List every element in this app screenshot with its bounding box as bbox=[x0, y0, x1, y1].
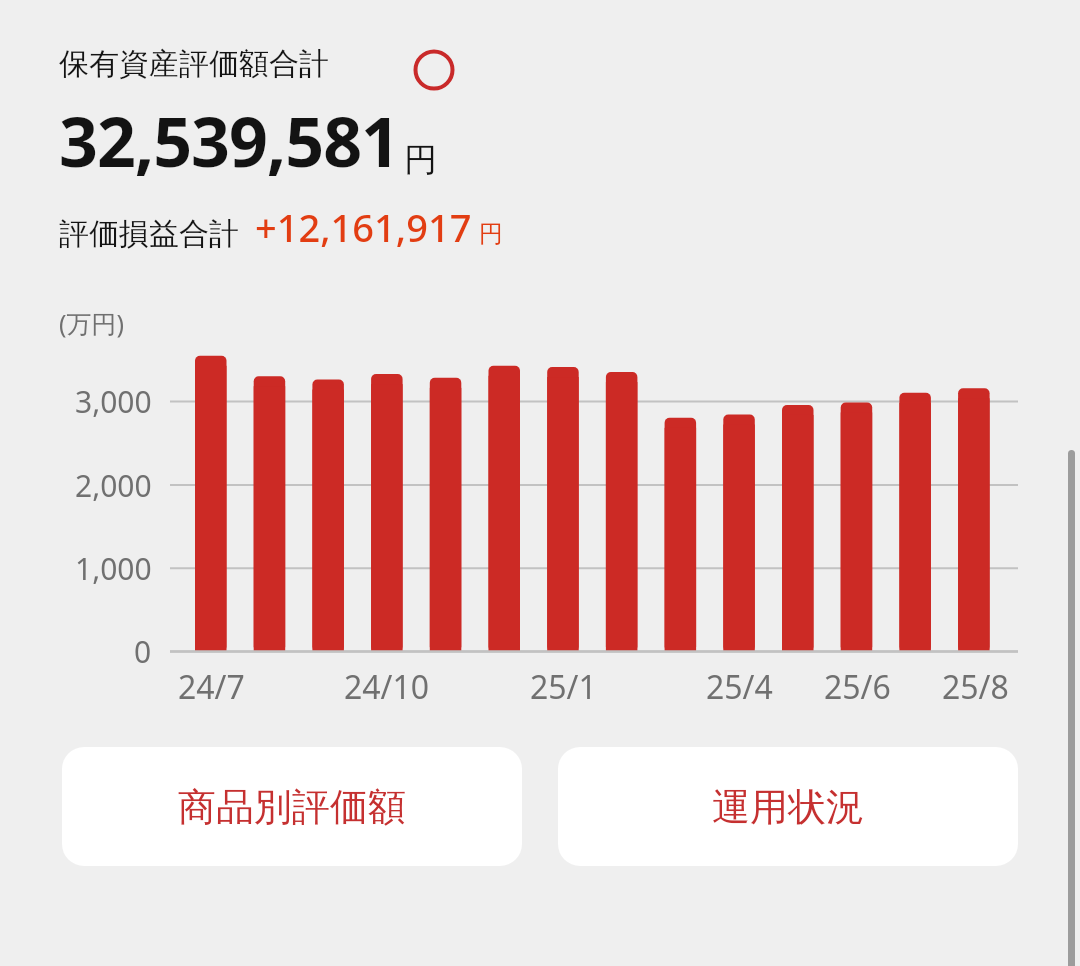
staticText: 3,000 bbox=[75, 381, 152, 422]
button[interactable]: 運用状況 bbox=[558, 747, 1018, 866]
staticText: 32,539,581 bbox=[59, 94, 399, 187]
button[interactable]: 保有資産評価額合計 bbox=[59, 44, 387, 84]
staticText: +12,161,917 bbox=[255, 201, 472, 253]
staticText: 25/4 bbox=[706, 665, 773, 709]
staticText: 保有資産評価額合計 bbox=[59, 45, 329, 83]
button[interactable]: 商品別評価額 bbox=[62, 747, 522, 866]
staticText: 1,000 bbox=[75, 548, 152, 589]
staticText: 25/8 bbox=[942, 665, 1009, 709]
staticText: 円 bbox=[404, 139, 437, 181]
staticText: 0 bbox=[134, 631, 152, 672]
staticText: 25/1 bbox=[530, 665, 597, 709]
staticText: 円 bbox=[479, 219, 503, 249]
staticText: 24/7 bbox=[178, 665, 245, 709]
staticText: 運用状況 bbox=[712, 783, 864, 831]
staticText: 2,000 bbox=[75, 465, 152, 506]
staticText: 25/6 bbox=[824, 665, 891, 709]
staticText: 評価損益合計 bbox=[59, 215, 239, 253]
staticText: 商品別評価額 bbox=[178, 783, 406, 831]
staticText: 24/10 bbox=[344, 665, 430, 709]
staticText: (万円) bbox=[59, 306, 125, 340]
